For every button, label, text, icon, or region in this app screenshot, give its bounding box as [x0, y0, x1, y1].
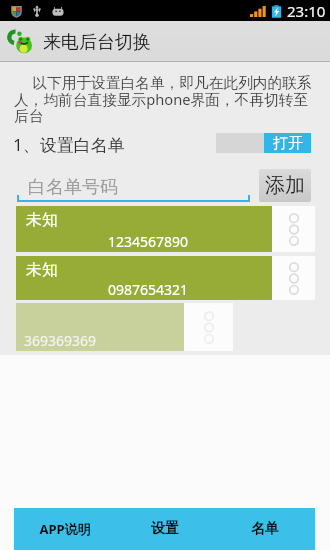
button[interactable]: 未知 [16, 206, 330, 252]
staticText: 1234567890 [108, 232, 189, 251]
button[interactable]: 设置 [115, 508, 215, 550]
button[interactable]: 添加 [259, 169, 311, 202]
staticText: 未知 [26, 210, 58, 230]
staticText: 设置 [151, 520, 179, 538]
staticText: 23:10 [287, 1, 326, 21]
staticText: 1、设置白名单 [13, 133, 125, 153]
button[interactable]: 白名单号码 [17, 168, 250, 202]
staticText: 添加 [265, 173, 305, 198]
button[interactable]: 未知 [16, 256, 330, 300]
staticText: 打开 [273, 134, 303, 153]
staticText: 以下用于设置白名单，即凡在此列内的联系人，均前台直接显示phone界面，不再切转… [14, 72, 322, 125]
button[interactable]: More options [272, 206, 315, 252]
button[interactable]: APP说明 [14, 508, 115, 550]
staticText: 未知 [26, 260, 58, 280]
button[interactable]: More options [272, 256, 315, 300]
staticText: 0987654321 [108, 280, 189, 299]
staticText: 白名单号码 [28, 176, 118, 199]
staticText: 名单 [251, 520, 279, 538]
button[interactable]: More options [184, 303, 233, 351]
staticText: 来电后台切换 [43, 31, 151, 54]
staticText: APP说明 [39, 520, 91, 538]
staticText: 369369369 [24, 331, 97, 350]
button[interactable]: 打开 [216, 133, 311, 153]
button[interactable]: 369369369 [16, 303, 330, 351]
button[interactable]: 名单 [215, 508, 315, 550]
